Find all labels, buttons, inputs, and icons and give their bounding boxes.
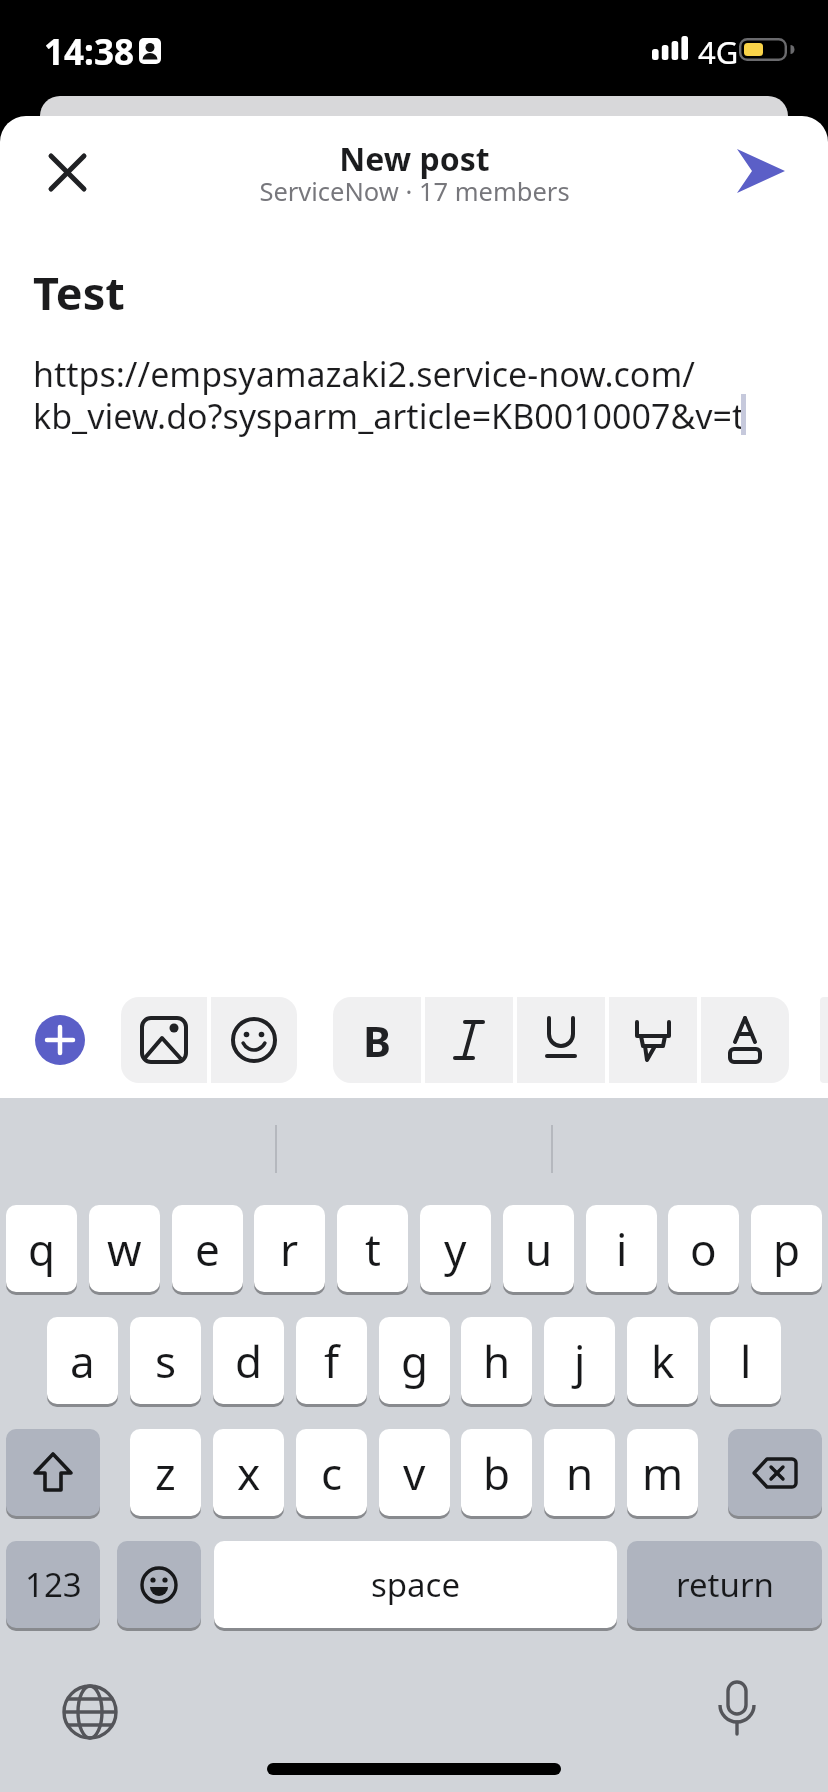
button[interactable]: y — [420, 1205, 491, 1292]
staticText: 14:38 — [44, 28, 134, 76]
button[interactable] — [609, 997, 697, 1083]
button[interactable]: a — [47, 1317, 118, 1404]
staticText: 4G — [698, 31, 739, 73]
staticText: h — [483, 1331, 511, 1391]
staticText: u — [525, 1219, 553, 1279]
staticText: t — [365, 1219, 381, 1279]
staticText: b — [483, 1443, 511, 1503]
button[interactable] — [425, 997, 513, 1083]
button[interactable]: z — [130, 1429, 201, 1516]
button[interactable]: s — [130, 1317, 201, 1404]
staticText: s — [155, 1331, 177, 1391]
staticText: q — [28, 1219, 56, 1279]
button[interactable]: l — [710, 1317, 781, 1404]
button[interactable] — [211, 997, 297, 1083]
button[interactable] — [121, 997, 207, 1083]
button[interactable]: return — [627, 1541, 822, 1628]
button[interactable] — [58, 1680, 122, 1744]
button[interactable]: g — [379, 1317, 450, 1404]
staticText: x — [237, 1443, 261, 1503]
staticText: ServiceNow · 17 members — [259, 174, 570, 209]
button[interactable] — [6, 1429, 100, 1516]
staticText: a — [70, 1331, 95, 1391]
staticText: l — [740, 1331, 752, 1391]
button[interactable]: 123 — [6, 1541, 100, 1628]
staticText: p — [773, 1219, 801, 1279]
staticText: https://empsyamazaki2.service-now.com/ k… — [33, 351, 745, 439]
button[interactable]: u — [503, 1205, 574, 1292]
button[interactable]: p — [751, 1205, 822, 1292]
button[interactable]: c — [296, 1429, 367, 1516]
staticText: j — [574, 1331, 586, 1391]
button[interactable]: k — [627, 1317, 698, 1404]
button[interactable] — [517, 997, 605, 1083]
staticText: r — [280, 1219, 299, 1279]
staticText: c — [321, 1443, 343, 1503]
button[interactable] — [117, 1541, 201, 1628]
staticText: e — [195, 1219, 220, 1279]
staticText: B — [363, 1012, 391, 1069]
staticText: New post — [339, 137, 490, 179]
staticText: w — [107, 1219, 142, 1279]
staticText: g — [401, 1331, 429, 1391]
button[interactable]: i — [586, 1205, 657, 1292]
staticText: o — [690, 1219, 717, 1279]
button[interactable] — [36, 140, 100, 204]
staticText: space — [371, 1562, 461, 1607]
staticText: i — [616, 1219, 628, 1279]
staticText: Test — [33, 262, 125, 323]
button[interactable]: o — [668, 1205, 739, 1292]
button[interactable]: d — [213, 1317, 284, 1404]
button[interactable]: j — [544, 1317, 615, 1404]
staticText: n — [566, 1443, 594, 1503]
button[interactable]: x — [213, 1429, 284, 1516]
button[interactable]: space — [214, 1541, 617, 1628]
staticText: d — [235, 1331, 263, 1391]
button[interactable]: r — [254, 1205, 325, 1292]
staticText: z — [155, 1443, 176, 1503]
staticText: 123 — [25, 1562, 82, 1607]
button[interactable]: e — [172, 1205, 243, 1292]
button[interactable]: B — [333, 997, 421, 1083]
staticText: k — [651, 1331, 675, 1391]
staticText: return — [676, 1562, 774, 1607]
button[interactable] — [35, 1015, 85, 1065]
button[interactable]: m — [627, 1429, 698, 1516]
button[interactable] — [722, 138, 798, 206]
button[interactable]: v — [379, 1429, 450, 1516]
button[interactable]: n — [544, 1429, 615, 1516]
button[interactable]: h — [461, 1317, 532, 1404]
button[interactable]: w — [89, 1205, 160, 1292]
button[interactable] — [701, 997, 789, 1083]
button[interactable]: b — [461, 1429, 532, 1516]
button[interactable]: f — [296, 1317, 367, 1404]
button[interactable] — [728, 1429, 822, 1516]
button[interactable] — [707, 1678, 767, 1746]
staticText: y — [444, 1219, 467, 1279]
button[interactable]: q — [6, 1205, 77, 1292]
staticText: v — [403, 1443, 426, 1503]
staticText: f — [324, 1331, 340, 1391]
button[interactable]: t — [337, 1205, 408, 1292]
staticText: m — [642, 1443, 684, 1503]
